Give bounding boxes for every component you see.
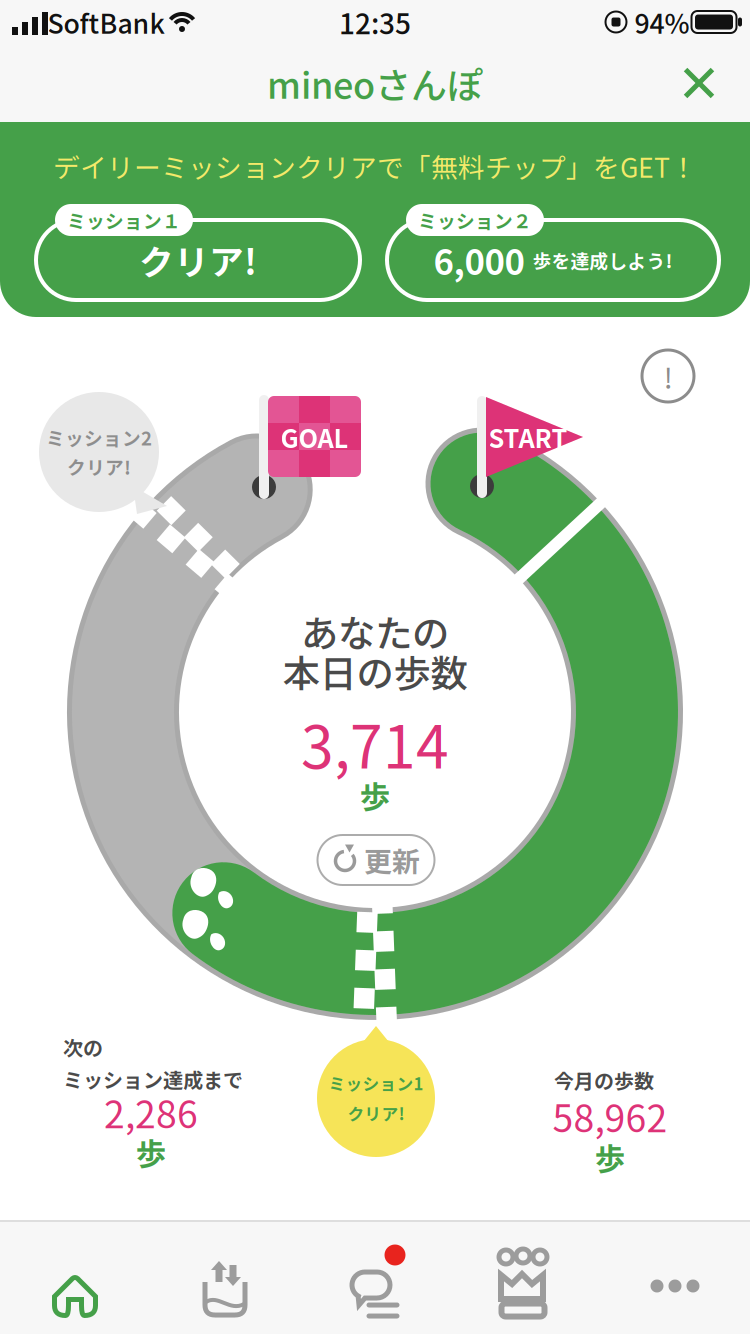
button[interactable]: 6,000 bbox=[387, 204, 719, 300]
button[interactable]: Community bbox=[300, 1237, 450, 1334]
button[interactable]: Data usage bbox=[150, 1237, 300, 1334]
staticText: クリア! bbox=[347, 1101, 404, 1125]
staticText: 今月の歩数 bbox=[554, 1065, 654, 1094]
button[interactable]: Close bbox=[662, 46, 736, 120]
staticText: 更新 bbox=[364, 840, 420, 880]
staticText: ミッション2 bbox=[46, 424, 152, 451]
button[interactable]: 更新 bbox=[317, 835, 434, 885]
staticText: ! bbox=[663, 355, 672, 397]
staticText: 歩 bbox=[359, 773, 390, 817]
staticText: 94% bbox=[634, 3, 689, 41]
staticText: GOAL bbox=[280, 419, 348, 455]
staticText: 次の bbox=[63, 1032, 103, 1061]
staticText: 2,286 bbox=[104, 1085, 198, 1139]
staticText: SoftBank bbox=[47, 3, 164, 41]
staticText: ミッション１ bbox=[67, 206, 181, 233]
staticText: 3,714 bbox=[301, 700, 449, 785]
staticText: クリア! bbox=[67, 453, 131, 480]
staticText: ミッション達成まで bbox=[63, 1064, 243, 1093]
staticText: ミッション1 bbox=[328, 1071, 423, 1095]
staticText: クリア! bbox=[139, 235, 257, 285]
staticText: 6,000 bbox=[433, 235, 524, 285]
staticText: 歩 bbox=[135, 1130, 166, 1174]
staticText: START bbox=[488, 419, 567, 455]
staticText: デイリーミッションクリアで「無料チップ」をGET！ bbox=[53, 147, 697, 185]
staticText: 12:35 bbox=[339, 2, 411, 42]
staticText: mineoさんぽ bbox=[267, 57, 483, 109]
staticText: あなたの bbox=[301, 604, 449, 658]
button[interactable]: Info bbox=[636, 344, 700, 408]
staticText: 歩を達成しよう! bbox=[532, 246, 672, 273]
staticText: 58,962 bbox=[552, 1089, 667, 1143]
staticText: 本日の歩数 bbox=[282, 644, 467, 698]
staticText: 歩 bbox=[594, 1135, 625, 1179]
button[interactable]: Home bbox=[0, 1241, 150, 1334]
button[interactable]: クリア! bbox=[36, 204, 360, 300]
staticText: ミッション２ bbox=[418, 206, 532, 233]
button[interactable]: Rank bbox=[449, 1230, 599, 1334]
button[interactable]: More bbox=[600, 1230, 750, 1334]
